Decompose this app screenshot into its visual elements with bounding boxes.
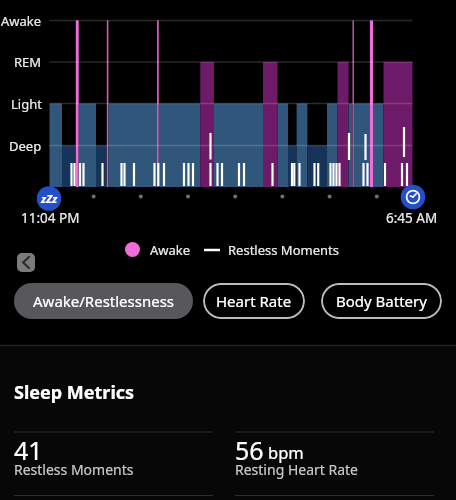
button[interactable]: [17, 253, 35, 272]
staticText: Awake/Restlessness: [33, 291, 175, 311]
staticText: Awake: [1, 12, 42, 30]
staticText: 41: [14, 433, 43, 467]
button[interactable]: Awake/Restlessness: [14, 283, 193, 319]
staticText: Heart Rate: [216, 291, 292, 311]
staticText: Restless Moments: [228, 241, 339, 259]
staticText: 56: [235, 433, 264, 467]
button[interactable]: Heart Rate: [203, 283, 305, 319]
staticText: 11:04 PM: [21, 209, 80, 226]
staticText: Awake: [150, 241, 191, 259]
staticText: 6:45 AM: [386, 209, 438, 226]
staticText: REM: [14, 53, 42, 71]
staticText: Resting Heart Rate: [235, 460, 358, 479]
staticText: zZz: [41, 191, 58, 206]
button[interactable]: Body Battery: [321, 283, 442, 319]
staticText: Deep: [9, 137, 42, 155]
staticText: Light: [11, 95, 42, 113]
staticText: Restless Moments: [14, 460, 134, 479]
staticText: Body Battery: [336, 291, 427, 311]
staticText: Sleep Metrics: [14, 380, 135, 405]
staticText: bpm: [268, 441, 304, 463]
